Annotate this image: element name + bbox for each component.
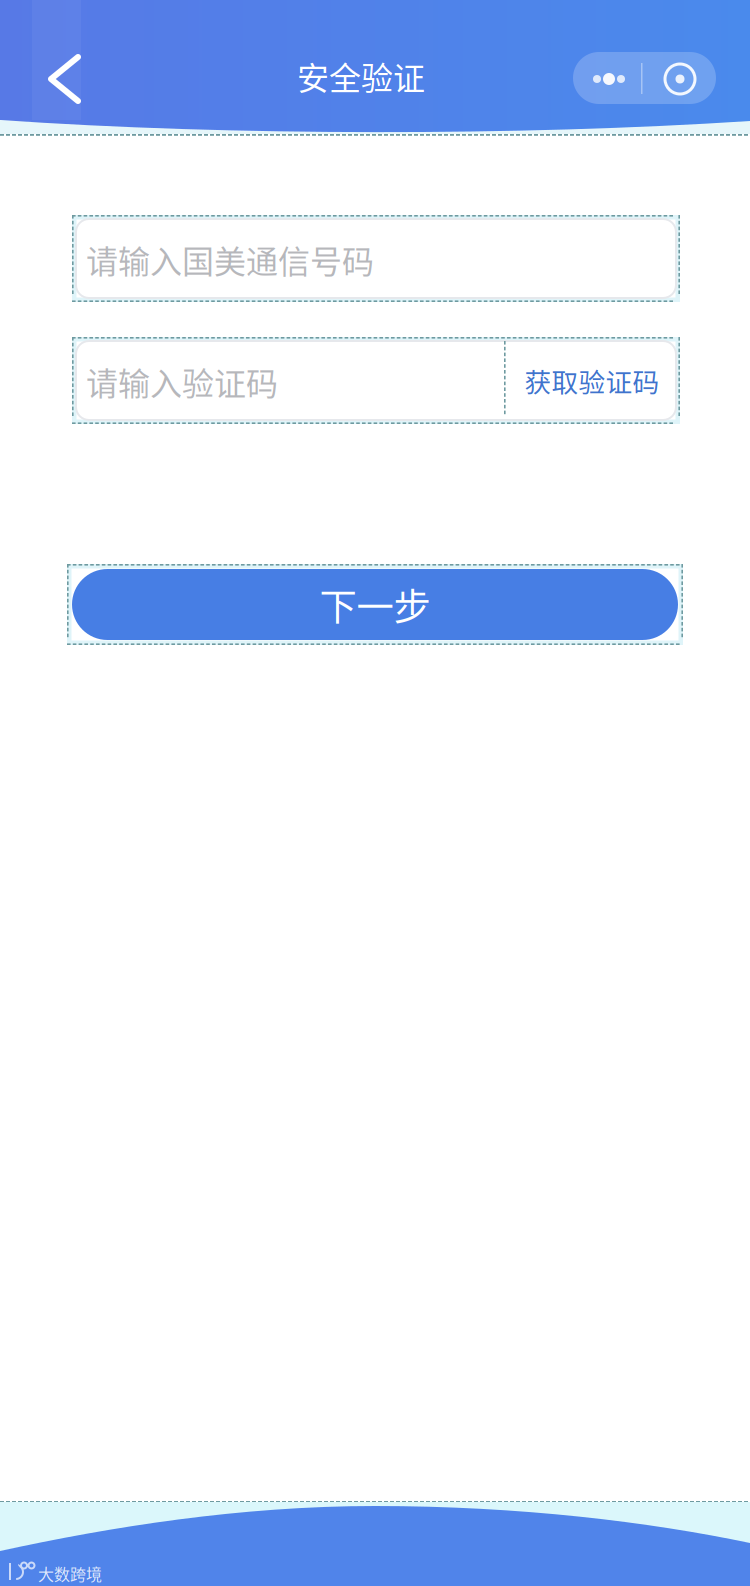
button[interactable]: 下一步 bbox=[67, 564, 683, 645]
staticText: 下一步 bbox=[319, 577, 430, 632]
button[interactable]: More options bbox=[573, 52, 716, 104]
staticText: 获取验证码 bbox=[524, 361, 659, 400]
staticText: 大数跨境 bbox=[38, 1562, 102, 1585]
button[interactable]: 获取验证码 bbox=[504, 337, 680, 424]
staticText: 请输入验证码 bbox=[86, 358, 278, 405]
button[interactable]: Back bbox=[32, 0, 81, 120]
staticText: 安全验证 bbox=[297, 53, 425, 99]
staticText: 请输入国美通信号码 bbox=[86, 236, 374, 283]
